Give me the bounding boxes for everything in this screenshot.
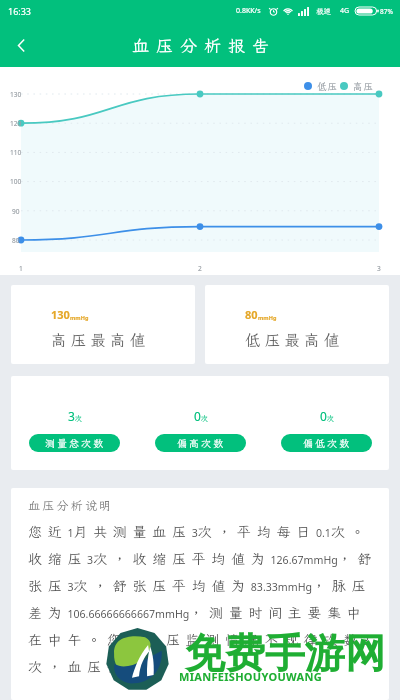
staticText: 130	[10, 90, 22, 99]
staticText: 免费手游网	[185, 628, 385, 678]
staticText: 极速	[316, 6, 331, 16]
staticText: 16:33	[8, 5, 32, 17]
button[interactable]: 测量总次数	[29, 434, 120, 452]
staticText: 低压最高值	[245, 330, 344, 350]
staticText: 87%	[380, 7, 393, 16]
staticText: 偏高次数	[177, 437, 225, 450]
staticText: 次	[201, 414, 208, 423]
staticText: 0	[320, 408, 327, 424]
staticText: 偏低次数	[303, 437, 351, 450]
staticText: 次	[75, 414, 82, 423]
button[interactable]: 130	[11, 285, 195, 364]
staticText: 血压分析说明	[28, 498, 114, 514]
staticText: 您近1月共测量血压3次，平均每日0.1次。收缩压3次，收缩压平均值为126.67…	[28, 523, 380, 676]
button[interactable]: Back	[0, 24, 42, 66]
staticText: 血压分析报告	[132, 34, 276, 56]
button[interactable]: 偏低次数	[281, 434, 372, 452]
staticText: 测量总次数	[45, 437, 105, 450]
staticText: 110	[10, 148, 22, 157]
staticText: 0.8KK/s	[236, 6, 261, 16]
staticText: 1	[19, 264, 23, 273]
staticText: 次	[327, 414, 334, 423]
button[interactable]: 80	[205, 285, 389, 364]
staticText: mmHg	[70, 314, 89, 321]
staticText: 4G	[340, 6, 350, 16]
button[interactable]: 偏高次数	[155, 434, 246, 452]
staticText: 90	[12, 207, 20, 216]
staticText: 3	[377, 264, 381, 273]
staticText: 2	[198, 264, 202, 273]
staticText: 低压	[317, 80, 338, 92]
staticText: mmHg	[258, 314, 277, 321]
staticText: MIANFEISHOUYOUWANG	[179, 669, 322, 684]
staticText: 100	[10, 177, 22, 186]
staticText: 0	[194, 408, 201, 424]
staticText: 80	[12, 236, 20, 245]
staticText: 120	[10, 119, 22, 128]
staticText: 130	[51, 307, 70, 322]
staticText: 3	[68, 408, 75, 424]
staticText: 高压	[353, 80, 374, 92]
staticText: 80	[245, 307, 258, 322]
staticText: 高压最高值	[51, 330, 150, 350]
